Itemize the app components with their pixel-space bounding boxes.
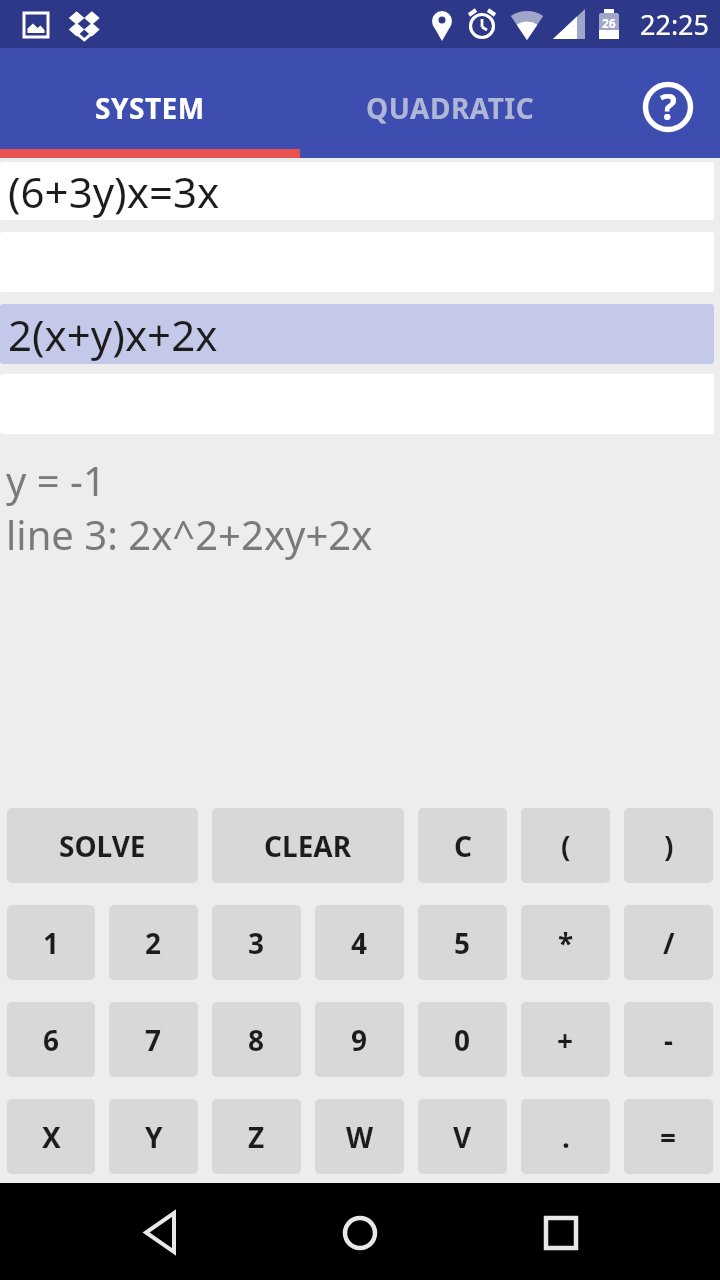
- staticText: C: [454, 827, 472, 865]
- button[interactable]: SOLVE: [7, 808, 198, 883]
- staticText: V: [453, 1118, 472, 1156]
- button[interactable]: Z: [212, 1099, 301, 1174]
- staticText: ): [664, 827, 674, 865]
- staticText: 4: [351, 924, 368, 962]
- button[interactable]: 7: [109, 1002, 198, 1077]
- button[interactable]: 5: [418, 905, 507, 980]
- staticText: X: [42, 1118, 61, 1156]
- button[interactable]: =: [624, 1099, 713, 1174]
- button[interactable]: Y: [109, 1099, 198, 1174]
- button[interactable]: 8: [212, 1002, 301, 1077]
- staticText: 26: [602, 15, 616, 31]
- button[interactable]: ?: [642, 81, 694, 133]
- button[interactable]: SYSTEM: [0, 48, 300, 158]
- button[interactable]: (: [521, 808, 610, 883]
- button[interactable]: 1: [7, 905, 95, 980]
- staticText: /: [663, 924, 675, 962]
- staticText: ?: [660, 83, 677, 131]
- button[interactable]: CLEAR: [212, 808, 404, 883]
- button[interactable]: 9: [315, 1002, 404, 1077]
- button[interactable]: [480, 1183, 720, 1280]
- staticText: Y: [145, 1118, 163, 1156]
- button[interactable]: +: [521, 1002, 610, 1077]
- staticText: line 3: 2x^2+2xy+2x: [6, 507, 373, 561]
- staticText: +: [557, 1021, 574, 1059]
- staticText: 22:25: [640, 6, 710, 43]
- staticText: Z: [248, 1118, 265, 1156]
- button[interactable]: .: [521, 1099, 610, 1174]
- button[interactable]: 6: [7, 1002, 95, 1077]
- button[interactable]: -: [624, 1002, 713, 1077]
- button[interactable]: QUADRATIC: [300, 48, 600, 158]
- button[interactable]: 2(x+y)x+2x: [0, 304, 714, 364]
- button[interactable]: X: [7, 1099, 95, 1174]
- button[interactable]: V: [418, 1099, 507, 1174]
- button[interactable]: *: [521, 905, 610, 980]
- staticText: 2: [145, 924, 162, 962]
- staticText: SYSTEM: [95, 89, 205, 127]
- staticText: 3: [248, 924, 265, 962]
- staticText: *: [558, 924, 574, 962]
- staticText: -: [664, 1021, 673, 1059]
- button[interactable]: W: [315, 1099, 404, 1174]
- staticText: 0: [454, 1021, 471, 1059]
- staticText: .: [562, 1118, 570, 1156]
- button[interactable]: 2: [109, 905, 198, 980]
- button[interactable]: [0, 1183, 240, 1280]
- staticText: (6+3y)x=3x: [8, 163, 220, 220]
- staticText: =: [660, 1118, 677, 1156]
- staticText: QUADRATIC: [366, 89, 535, 127]
- button[interactable]: 0: [418, 1002, 507, 1077]
- button[interactable]: 4: [315, 905, 404, 980]
- button[interactable]: [240, 1183, 480, 1280]
- staticText: 6: [43, 1021, 60, 1059]
- staticText: 8: [248, 1021, 265, 1059]
- staticText: 5: [454, 924, 471, 962]
- button[interactable]: 3: [212, 905, 301, 980]
- staticText: y = -1: [6, 453, 106, 507]
- staticText: 7: [145, 1021, 162, 1059]
- staticText: (: [561, 827, 571, 865]
- button[interactable]: ): [624, 808, 713, 883]
- staticText: 1: [43, 924, 60, 962]
- staticText: W: [346, 1118, 374, 1156]
- staticText: 2(x+y)x+2x: [8, 306, 218, 363]
- button[interactable]: C: [418, 808, 507, 883]
- staticText: 9: [351, 1021, 368, 1059]
- button[interactable]: (6+3y)x=3x: [0, 162, 714, 220]
- staticText: CLEAR: [264, 827, 352, 865]
- staticText: SOLVE: [59, 827, 146, 865]
- button[interactable]: /: [624, 905, 713, 980]
